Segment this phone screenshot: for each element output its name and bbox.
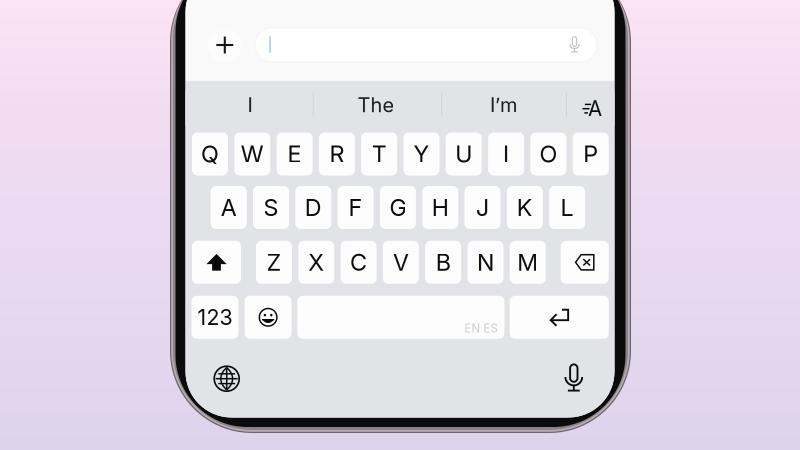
button[interactable]: S — [253, 186, 289, 229]
button[interactable]: G — [380, 186, 416, 229]
staticText: P — [583, 140, 598, 168]
staticText: L — [561, 193, 574, 222]
staticText: B — [436, 248, 451, 276]
staticText: T — [372, 140, 387, 168]
button[interactable]: D — [295, 186, 331, 229]
staticText: S — [263, 193, 278, 222]
button[interactable]: The — [316, 83, 436, 127]
staticText: X — [308, 248, 324, 276]
button[interactable]: F — [338, 186, 374, 229]
button[interactable]: E — [277, 132, 313, 175]
button[interactable]: Space — [297, 296, 504, 339]
staticText: E — [288, 140, 302, 168]
staticText: A — [221, 193, 237, 222]
button[interactable]: Emoji keyboard — [245, 296, 292, 339]
staticText: Z — [266, 248, 281, 276]
button[interactable]: Q — [192, 132, 228, 175]
button[interactable]: Dictate — [568, 36, 580, 53]
staticText: I’m — [490, 93, 517, 117]
staticText: Y — [413, 140, 429, 168]
button[interactable]: C — [341, 241, 377, 284]
staticText: F — [349, 193, 363, 222]
staticText: G — [389, 193, 406, 222]
staticText: The — [357, 93, 394, 117]
button[interactable]: W — [234, 132, 270, 175]
staticText: I — [503, 140, 509, 168]
staticText: O — [539, 140, 557, 168]
button[interactable]: T — [361, 132, 397, 175]
staticText: D — [305, 193, 322, 222]
staticText: M — [517, 248, 538, 276]
button[interactable]: K — [507, 186, 543, 229]
button[interactable]: N — [467, 241, 503, 284]
button[interactable]: Return — [510, 296, 609, 339]
staticText: C — [350, 248, 367, 276]
button[interactable]: A — [211, 186, 247, 229]
button[interactable]: P — [573, 132, 609, 175]
staticText: K — [517, 193, 533, 222]
button[interactable]: V — [383, 241, 419, 284]
button[interactable]: U — [446, 132, 482, 175]
staticText: N — [477, 248, 494, 276]
staticText: V — [393, 248, 409, 276]
staticText: H — [432, 193, 449, 222]
staticText: J — [476, 193, 489, 222]
button[interactable]: 123 — [191, 296, 238, 339]
button[interactable]: Delete — [561, 241, 609, 284]
button[interactable]: Y — [403, 132, 439, 175]
button[interactable]: L — [549, 186, 585, 229]
button[interactable]: Shift — [192, 241, 241, 284]
staticText: EN ES — [464, 321, 497, 335]
button[interactable]: R — [319, 132, 355, 175]
button[interactable]: H — [422, 186, 458, 229]
button[interactable]: I — [488, 132, 524, 175]
button[interactable]: Dictate — [563, 361, 585, 392]
staticText: I — [247, 93, 252, 117]
button[interactable]: O — [530, 132, 566, 175]
staticText: W — [241, 140, 264, 168]
staticText: 123 — [197, 304, 232, 330]
staticText: Q — [201, 140, 219, 168]
staticText: U — [455, 140, 472, 168]
button[interactable]: I — [190, 83, 310, 127]
button[interactable]: M — [510, 241, 546, 284]
button[interactable]: X — [298, 241, 334, 284]
staticText: R — [329, 140, 344, 168]
button[interactable]: Next keyboard — [214, 366, 239, 391]
button[interactable]: Z — [256, 241, 292, 284]
button[interactable]: B — [425, 241, 461, 284]
button[interactable]: Add attachment — [208, 28, 242, 62]
button[interactable]: I’m — [443, 83, 563, 127]
button[interactable]: J — [464, 186, 500, 229]
staticText: A — [588, 96, 602, 121]
button[interactable]: Text formatting — [582, 101, 601, 116]
